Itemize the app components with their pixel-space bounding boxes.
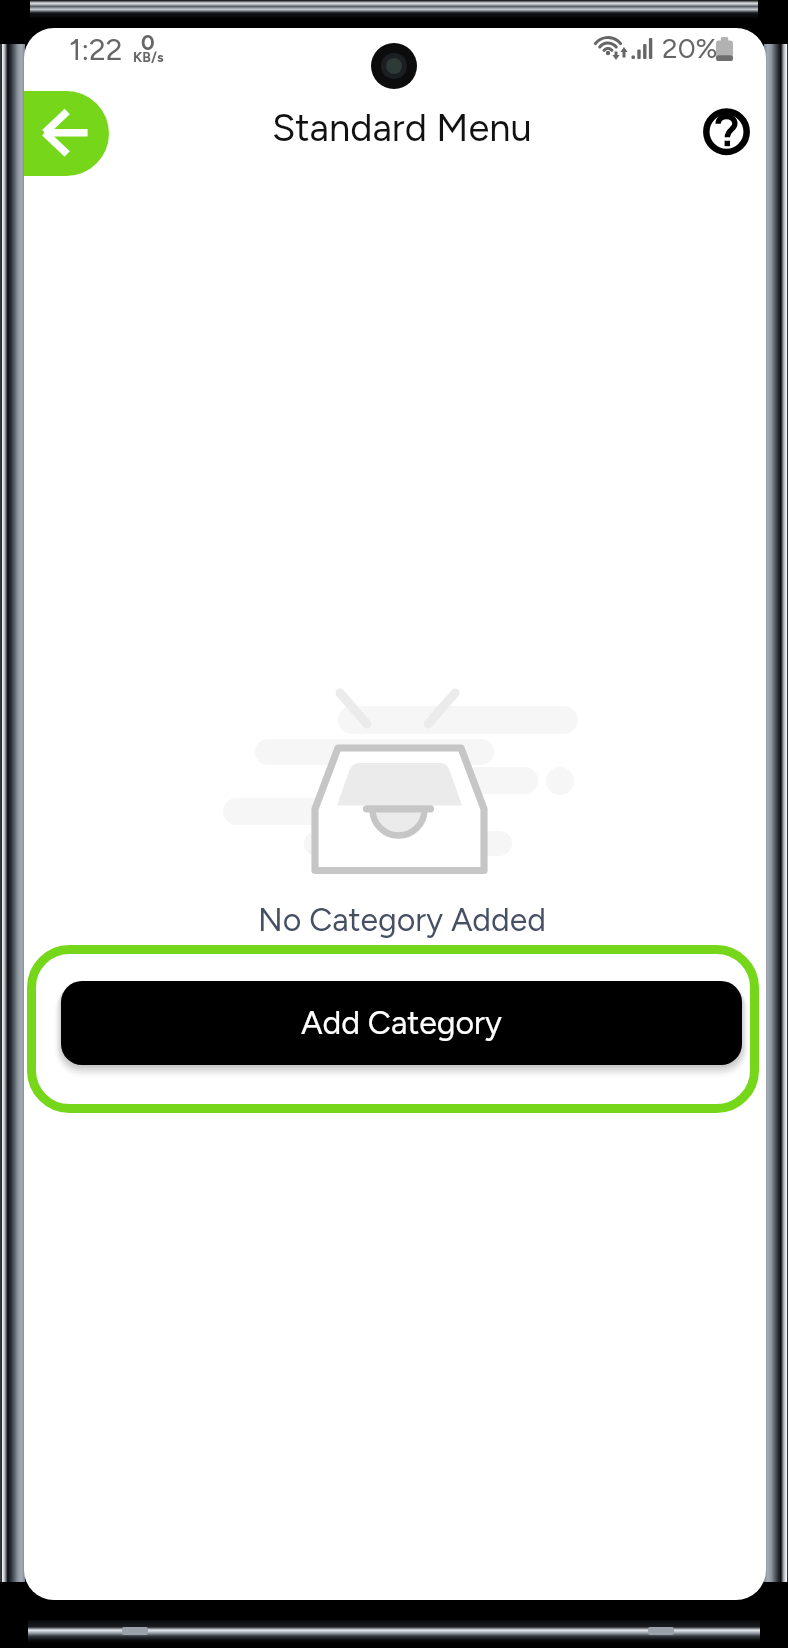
button[interactable]: Help xyxy=(691,96,761,166)
staticText: 20% xyxy=(662,31,718,65)
staticText: Standard Menu xyxy=(272,105,532,151)
staticText: No Category Added xyxy=(31,901,766,939)
staticText: Add Category xyxy=(301,1004,502,1042)
button[interactable]: Add Category xyxy=(61,981,742,1065)
button[interactable]: Back xyxy=(24,91,109,176)
staticText: 1:22 xyxy=(69,31,123,67)
staticText: KB/s xyxy=(133,49,164,66)
staticText: 0 xyxy=(141,30,155,55)
